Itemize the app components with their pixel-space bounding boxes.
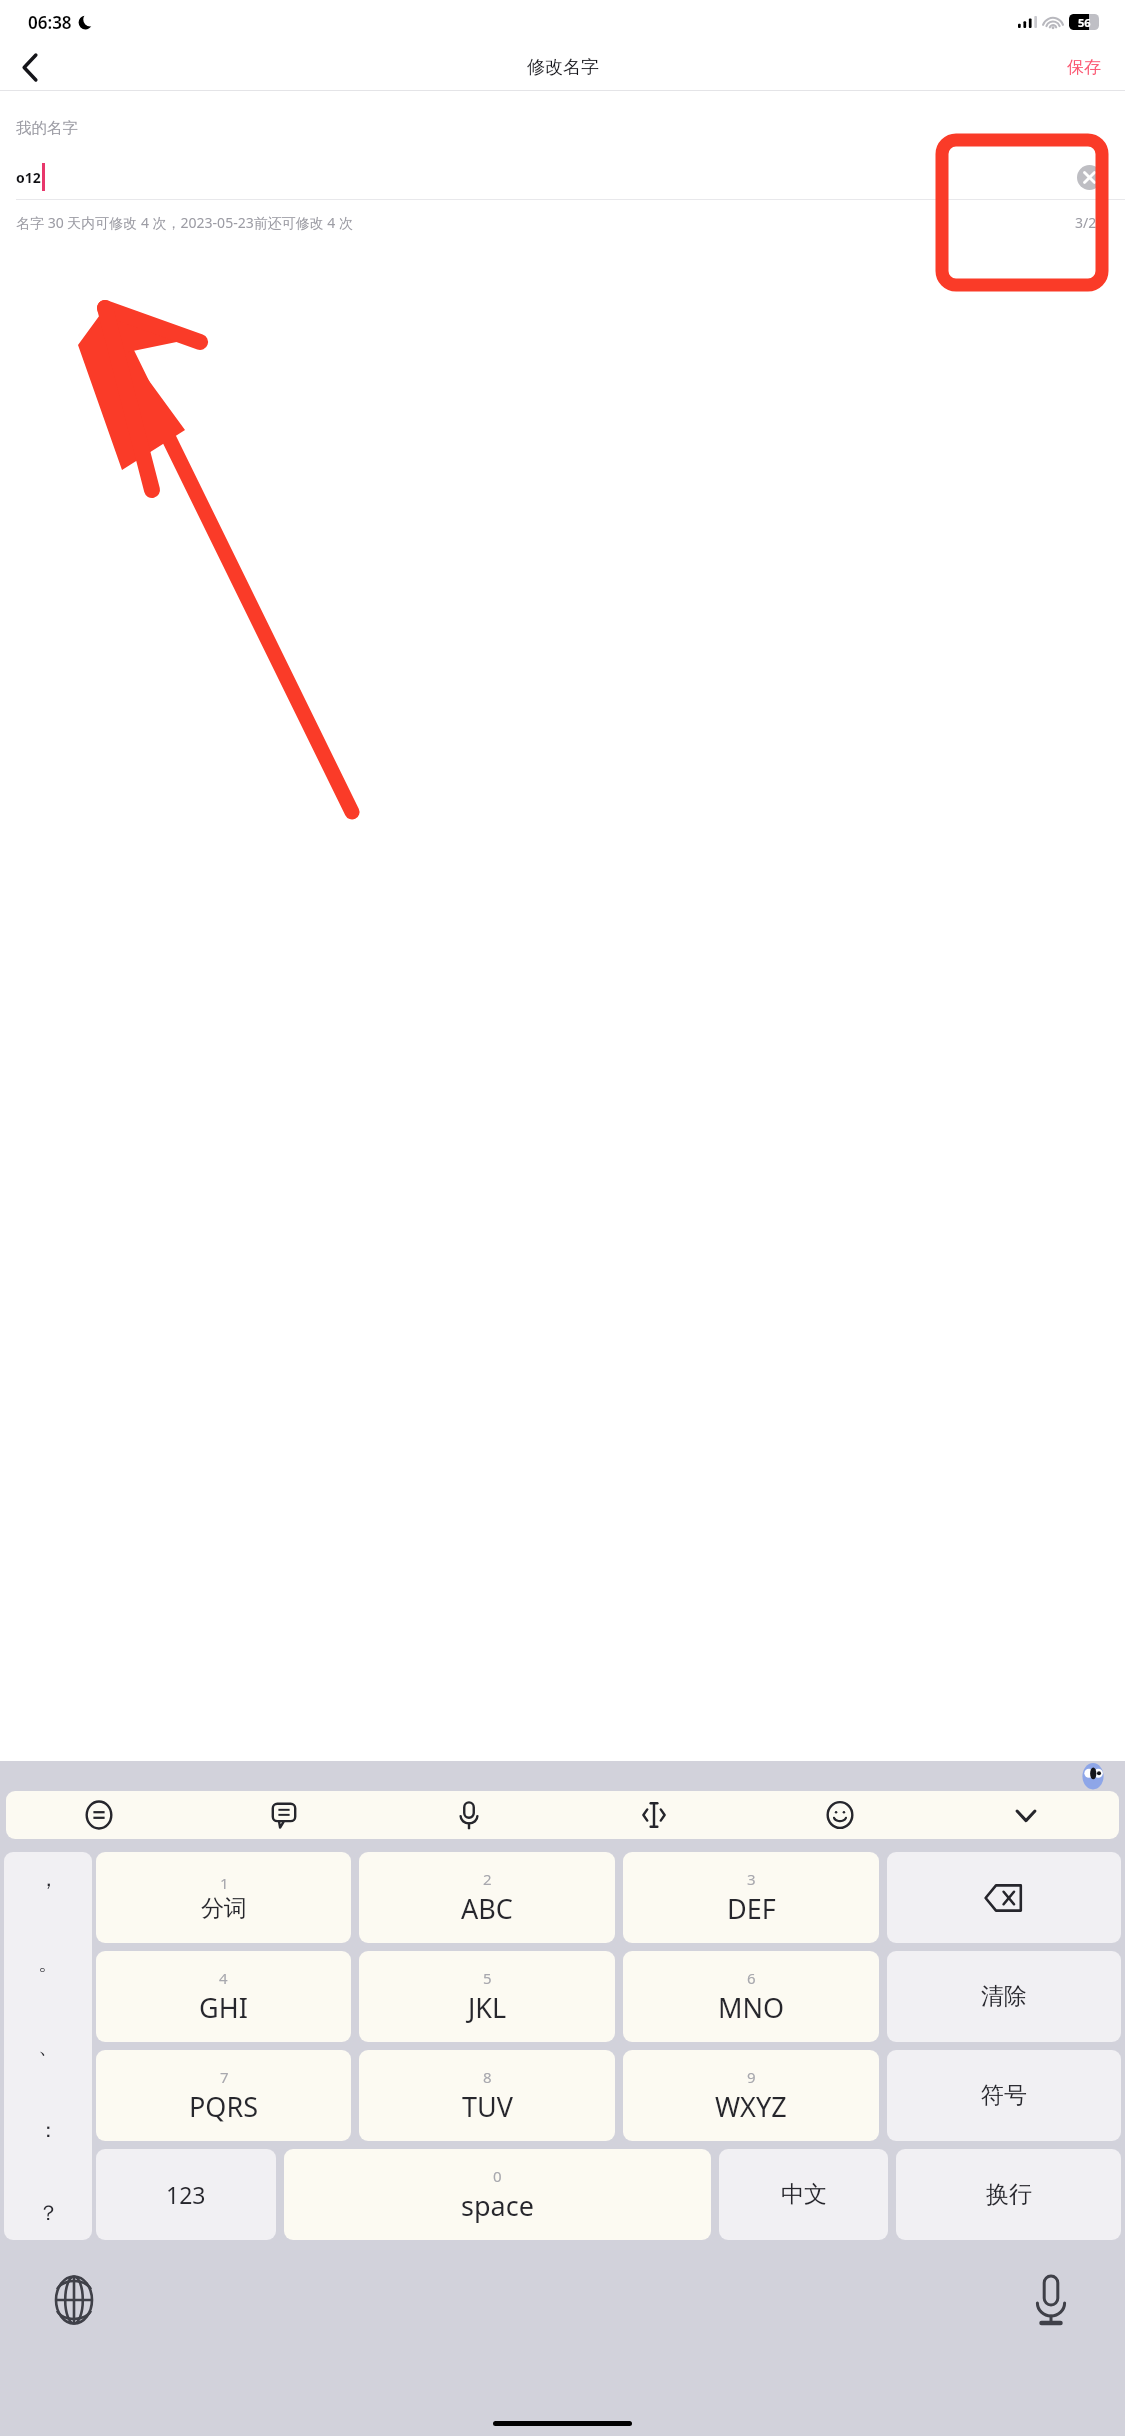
button[interactable]: 7 (96, 2050, 351, 2141)
staticText: 修改名字 (527, 56, 599, 79)
staticText: 。 (38, 1950, 59, 1976)
staticText: 1 (220, 1873, 229, 1893)
button[interactable]: Emoji (747, 1791, 933, 1839)
staticText: 3 (747, 1869, 756, 1889)
button[interactable]: Voice input (376, 1791, 561, 1839)
button[interactable]: 8 (359, 2050, 615, 2141)
button[interactable]: 6 (623, 1951, 879, 2042)
button[interactable]: 1 (96, 1852, 351, 1943)
button[interactable]: Switch language (46, 2272, 102, 2328)
button[interactable]: Backspace (887, 1852, 1121, 1943)
staticText: ABC (461, 1890, 513, 1927)
staticText: 名字 30 天内可修改 4 次，2023-05-23前还可修改 4 次 (16, 213, 353, 232)
button[interactable]: Phrases (191, 1791, 376, 1839)
button[interactable]: 4 (96, 1951, 351, 2042)
button[interactable]: 2 (359, 1852, 615, 1943)
staticText: 、 (38, 2033, 59, 2059)
staticText: 123 (166, 2179, 206, 2210)
staticText: JKL (468, 1989, 507, 2026)
staticText: space (461, 2187, 534, 2224)
staticText: 5 (483, 1968, 492, 1988)
staticText: 保存 (1067, 57, 1101, 78)
staticText: GHI (199, 1989, 248, 2026)
staticText: 8 (483, 2067, 492, 2087)
staticText: 4 (219, 1968, 228, 1988)
button[interactable]: Hide keyboard (933, 1791, 1119, 1839)
button[interactable]: Input method (6, 1791, 191, 1839)
staticText: PQRS (189, 2088, 259, 2125)
staticText: WXYZ (715, 2088, 787, 2125)
staticText: MNO (718, 1989, 785, 2026)
button[interactable]: 清除 (887, 1951, 1121, 2042)
staticText: 符号 (981, 2081, 1027, 2110)
staticText: 换行 (986, 2180, 1032, 2209)
staticText: ？ (38, 2200, 59, 2226)
button[interactable]: 保存 (1067, 57, 1101, 78)
staticText: 中文 (781, 2180, 827, 2209)
staticText: o12 (16, 168, 41, 187)
button[interactable]: Back (0, 44, 60, 90)
button[interactable]: 9 (623, 2050, 879, 2141)
button[interactable]: 中文 (719, 2149, 888, 2240)
button[interactable]: 0 (284, 2149, 711, 2240)
staticText: 清除 (981, 1982, 1027, 2011)
staticText: 3/20 (1075, 213, 1105, 232)
button[interactable]: 换行 (896, 2149, 1121, 2240)
staticText: 6 (747, 1968, 756, 1988)
staticText: TUV (462, 2088, 513, 2125)
staticText: 7 (220, 2067, 229, 2087)
staticText: ： (38, 2117, 59, 2143)
button[interactable]: 3 (623, 1852, 879, 1943)
button[interactable]: 123 (96, 2149, 276, 2240)
staticText: 06:38 (28, 11, 72, 34)
staticText: 56 (1078, 15, 1091, 30)
button[interactable]: Voice input (1023, 2272, 1079, 2328)
staticText: DEF (727, 1890, 776, 1927)
staticText: 我的名字 (16, 118, 78, 138)
button[interactable]: Cursor (561, 1791, 747, 1839)
staticText: 0 (493, 2166, 502, 2186)
staticText: ， (38, 1866, 59, 1892)
button[interactable]: ， (4, 1852, 92, 2240)
button[interactable]: 符号 (887, 2050, 1121, 2141)
staticText: 9 (747, 2067, 756, 2087)
button[interactable]: Clear text (1071, 159, 1107, 195)
button[interactable]: 5 (359, 1951, 615, 2042)
staticText: 分词 (201, 1894, 247, 1923)
staticText: 2 (483, 1869, 492, 1889)
